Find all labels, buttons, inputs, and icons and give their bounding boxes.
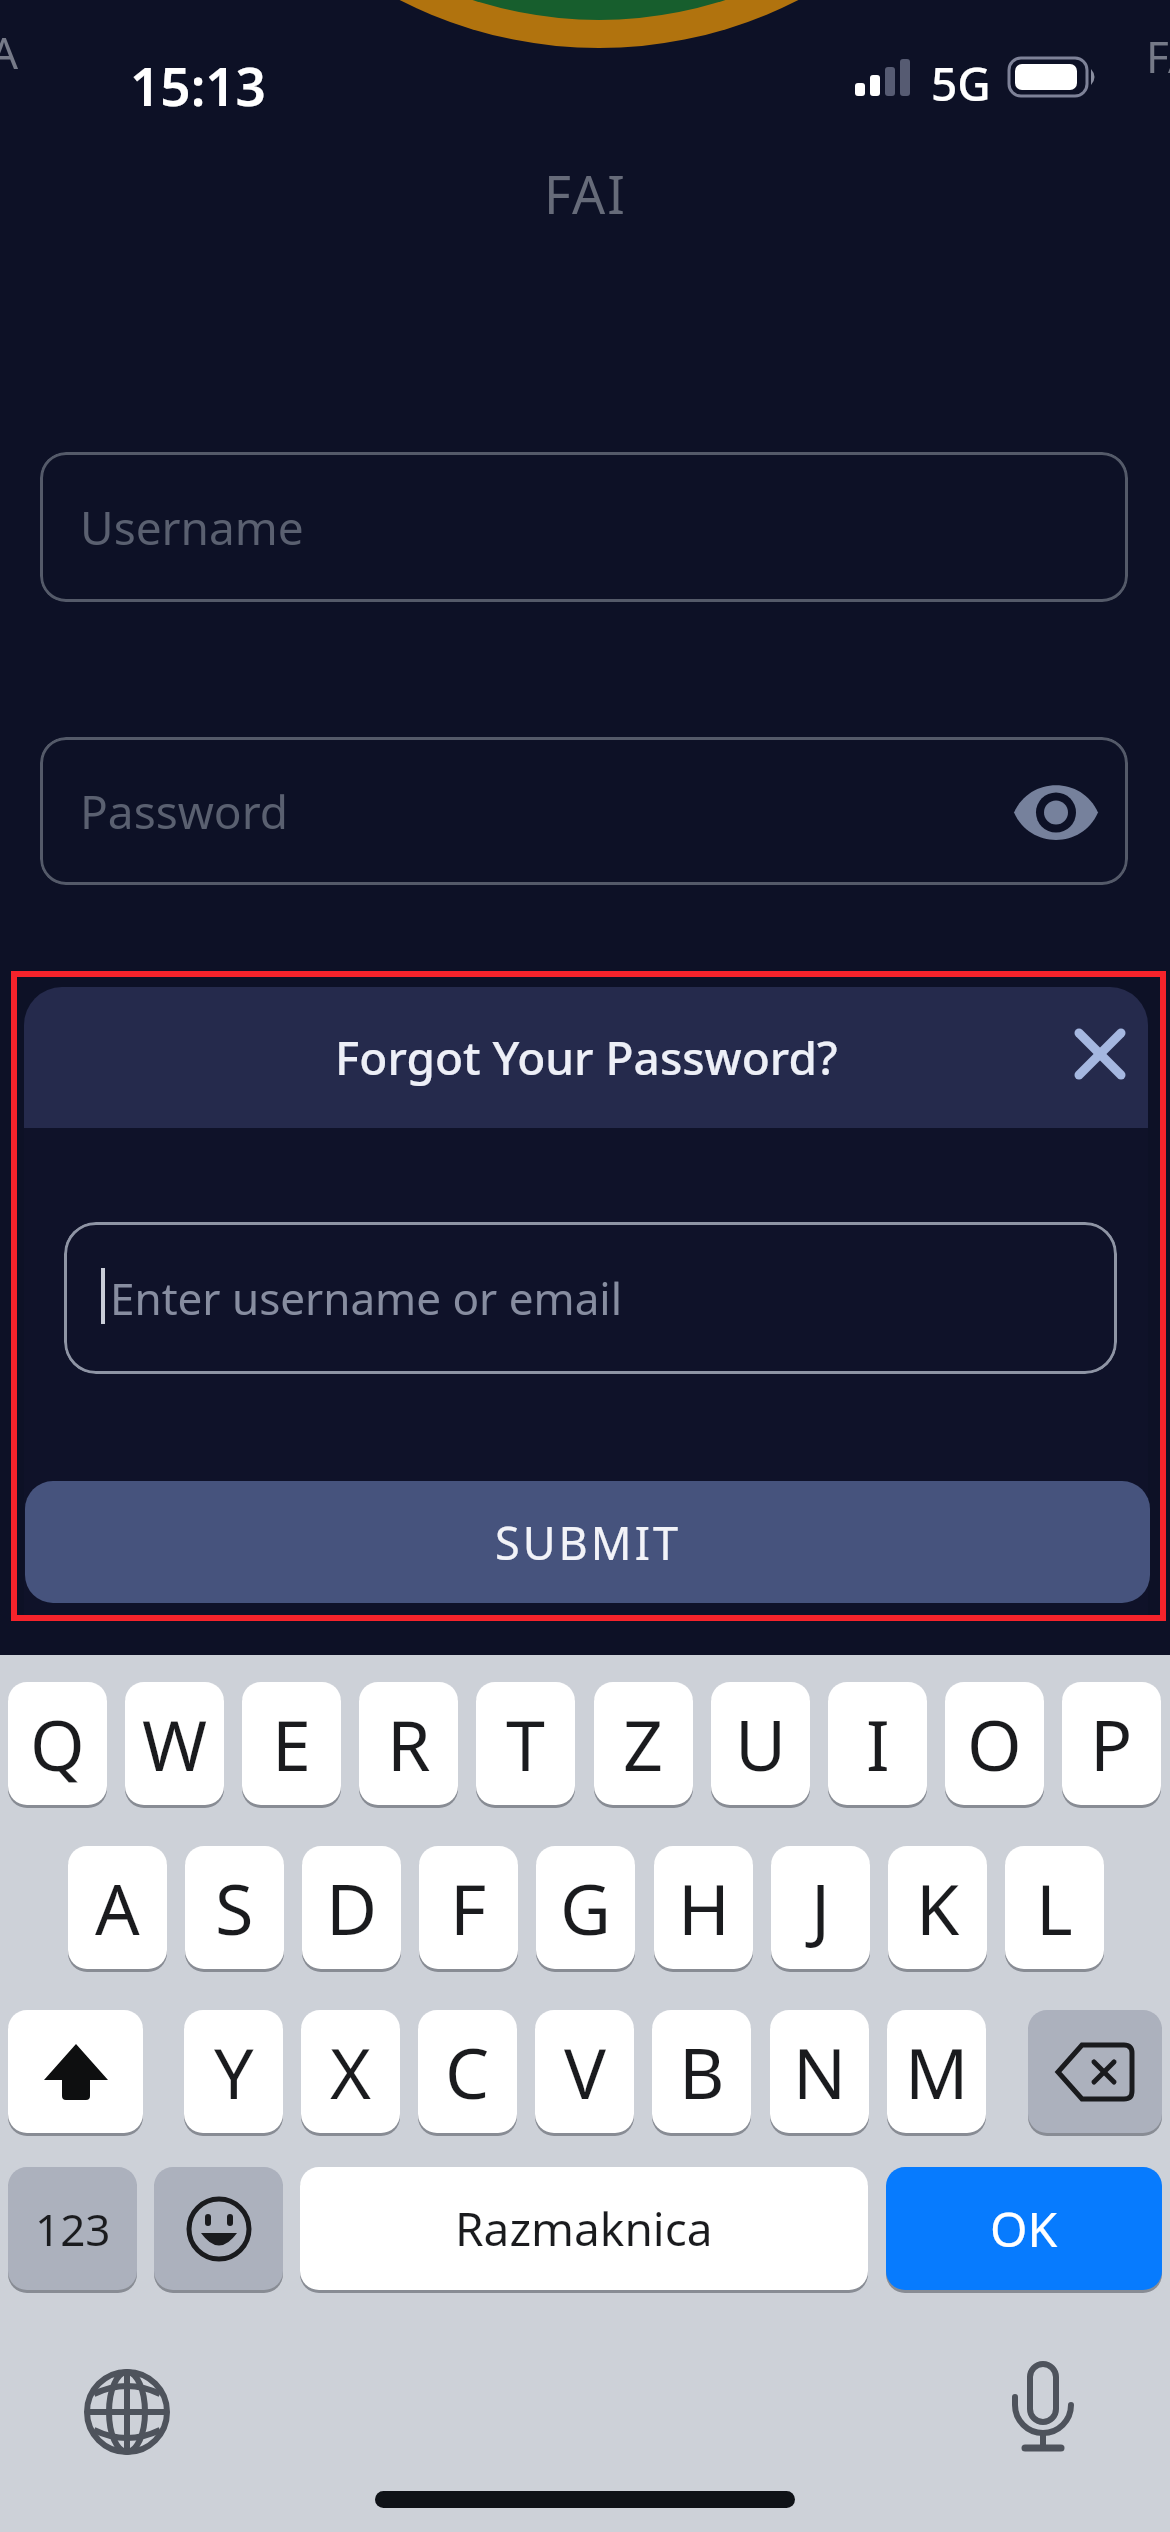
staticText: O (967, 1696, 1022, 1791)
staticText: S (215, 1860, 254, 1955)
button[interactable]: Password (40, 737, 1128, 885)
button[interactable]: V (535, 2010, 634, 2133)
button[interactable]: Username (40, 452, 1128, 602)
staticText: 15:13 (130, 49, 266, 121)
staticText: C (445, 2024, 490, 2119)
staticText: W (142, 1696, 208, 1791)
button[interactable]: W (125, 1682, 224, 1805)
button[interactable]: F (419, 1846, 518, 1969)
button[interactable]: O (945, 1682, 1044, 1805)
button[interactable]: X (301, 2010, 400, 2133)
staticText: Username (80, 496, 304, 559)
staticText: H (678, 1860, 730, 1955)
button[interactable] (154, 2167, 283, 2290)
button[interactable]: Y (184, 2010, 283, 2133)
staticText: G (560, 1860, 611, 1955)
staticText: R (387, 1696, 431, 1791)
button[interactable]: Z (594, 1682, 693, 1805)
staticText: Z (623, 1696, 664, 1791)
button[interactable]: 123 (8, 2167, 137, 2290)
button[interactable]: K (888, 1846, 987, 1969)
button[interactable]: R (359, 1682, 458, 1805)
button[interactable]: L (1005, 1846, 1104, 1969)
button[interactable]: U (711, 1682, 810, 1805)
button[interactable] (8, 2010, 143, 2133)
staticText: Razmaknica (455, 2197, 713, 2260)
staticText: Q (30, 1696, 85, 1791)
staticText: 123 (35, 2199, 111, 2259)
staticText: P (1090, 1696, 1133, 1791)
button[interactable]: J (771, 1846, 870, 1969)
staticText: A (0, 22, 19, 82)
button[interactable]: Enter username or email (64, 1222, 1117, 1374)
button[interactable]: T (476, 1682, 575, 1805)
staticText: L (1036, 1860, 1073, 1955)
button[interactable]: S (185, 1846, 284, 1969)
button[interactable]: OK (886, 2167, 1162, 2290)
button[interactable]: Q (8, 1682, 107, 1805)
staticText: M (905, 2024, 969, 2119)
staticText: U (735, 1696, 787, 1791)
staticText: Password (80, 780, 289, 843)
button[interactable]: H (654, 1846, 753, 1969)
button[interactable]: B (652, 2010, 751, 2133)
staticText: D (326, 1860, 378, 1955)
staticText: FAI (544, 158, 627, 229)
button[interactable]: A (68, 1846, 167, 1969)
staticText: N (793, 2024, 847, 2119)
staticText: X (330, 2024, 372, 2119)
button[interactable]: M (887, 2010, 986, 2133)
button[interactable]: C (418, 2010, 517, 2133)
staticText: K (916, 1860, 960, 1955)
staticText: V (564, 2024, 606, 2119)
staticText: SUBMIT (495, 1512, 681, 1573)
staticText: I (866, 1696, 890, 1791)
staticText: A (95, 1860, 140, 1955)
staticText: T (506, 1696, 545, 1791)
staticText: B (679, 2024, 725, 2119)
button[interactable]: E (242, 1682, 341, 1805)
button[interactable] (1028, 2010, 1162, 2133)
button[interactable]: SUBMIT (25, 1481, 1150, 1603)
button[interactable]: Razmaknica (300, 2167, 868, 2290)
staticText: Y (214, 2024, 254, 2119)
staticText: OK (990, 2196, 1058, 2261)
staticText: J (811, 1860, 831, 1955)
staticText: E (272, 1696, 311, 1791)
staticText: 5G (931, 52, 991, 115)
button[interactable]: N (770, 2010, 869, 2133)
staticText: Enter username or email (110, 1268, 623, 1328)
button[interactable]: G (536, 1846, 635, 1969)
button[interactable]: I (828, 1682, 927, 1805)
staticText: F (450, 1860, 487, 1955)
button[interactable]: P (1062, 1682, 1161, 1805)
staticText: FA (1146, 26, 1170, 86)
button[interactable]: D (302, 1846, 401, 1969)
staticText: Forgot Your Password? (335, 1026, 838, 1089)
button[interactable] (1056, 1010, 1144, 1098)
